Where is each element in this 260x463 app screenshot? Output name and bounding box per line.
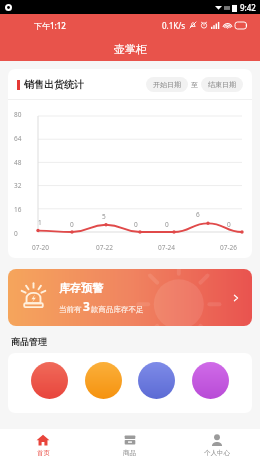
staticText: 9:42	[240, 2, 256, 13]
button[interactable]: 商品管理入口	[85, 362, 122, 399]
staticText: 库存预警	[59, 281, 103, 295]
staticText: 销售出货统计	[24, 78, 84, 91]
button[interactable]: 商品管理入口	[31, 362, 68, 399]
button[interactable]: 商品	[86, 429, 173, 463]
staticText: 0	[165, 220, 169, 229]
staticText: 07-20	[32, 243, 49, 252]
other: 查看库存预警	[231, 293, 241, 303]
button[interactable]: 商品管理入口	[192, 362, 229, 399]
staticText: 0.1K/s	[162, 20, 186, 31]
staticText: 商品管理	[11, 336, 47, 347]
staticText: 0	[70, 220, 74, 229]
staticText: 16	[14, 205, 32, 214]
button[interactable]: 首页	[0, 429, 86, 463]
staticText: 07-24	[158, 243, 175, 252]
staticText: 当前有	[59, 305, 82, 314]
staticText: 0	[227, 220, 231, 229]
button[interactable]: 商品管理入口	[138, 362, 175, 399]
staticText: 款商品库存不足	[91, 305, 144, 314]
button[interactable]: 结束日期	[201, 77, 243, 92]
staticText: 结束日期	[208, 80, 236, 89]
button[interactable]: 开始日期	[146, 77, 188, 92]
staticText: 6	[196, 210, 200, 219]
staticText: 至	[191, 80, 198, 89]
staticText: 32	[14, 181, 32, 190]
staticText: 壶掌柜	[114, 42, 147, 56]
staticText: 07-22	[96, 243, 113, 252]
staticText: 个人中心	[204, 449, 230, 457]
staticText: 开始日期	[153, 80, 181, 89]
staticText: 首页	[37, 449, 50, 457]
staticText: 64	[14, 134, 32, 143]
staticText: 0	[134, 220, 138, 229]
staticText: 0	[14, 229, 32, 238]
staticText: 下午1:12	[34, 20, 66, 31]
staticText: 3	[83, 298, 90, 314]
staticText: 07-26	[220, 243, 237, 252]
staticText: 商品	[123, 449, 136, 457]
staticText: 48	[14, 158, 32, 167]
button[interactable]: 个人中心	[173, 429, 260, 463]
staticText: 80	[14, 110, 32, 119]
staticText: 1	[38, 218, 42, 227]
staticText: 5	[102, 212, 106, 221]
button[interactable]: 库存预警	[8, 269, 252, 326]
